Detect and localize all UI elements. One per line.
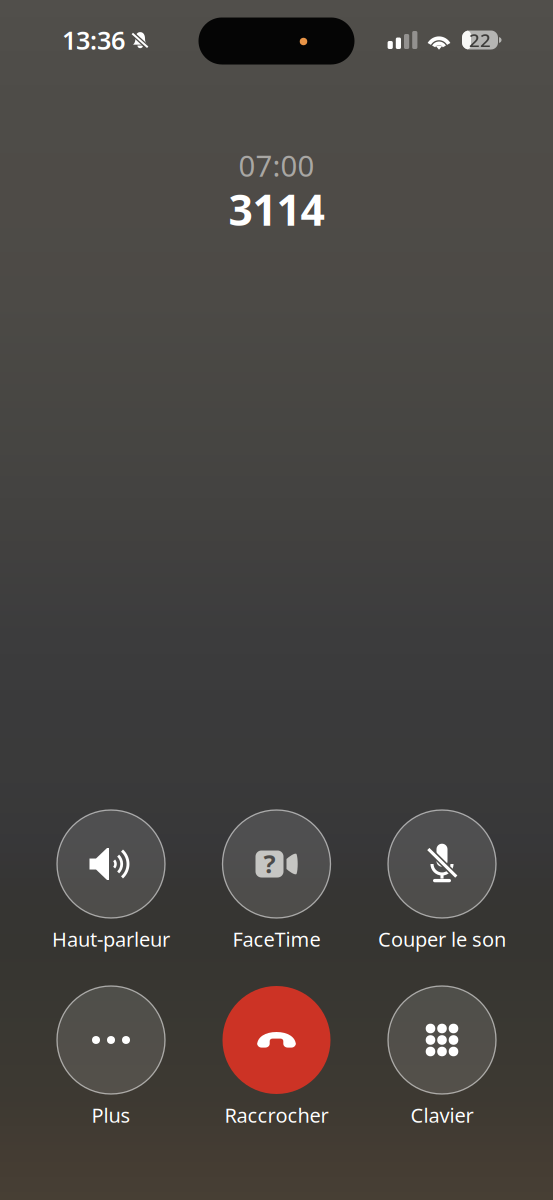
staticText: 07:00: [238, 146, 314, 185]
button[interactable]: Plus: [28, 986, 194, 1136]
staticText: FaceTime: [232, 926, 320, 952]
staticText: 13:36: [62, 23, 125, 57]
staticText: Couper le son: [378, 926, 506, 952]
button[interactable]: Haut-parleur: [28, 810, 194, 960]
staticText: Clavier: [410, 1102, 473, 1128]
staticText: ?: [263, 847, 275, 880]
button[interactable]: Couper le son: [359, 810, 525, 960]
staticText: Raccrocher: [224, 1102, 328, 1128]
button[interactable]: Clavier: [359, 986, 525, 1136]
button[interactable]: Raccrocher: [194, 986, 359, 1136]
staticText: Plus: [91, 1102, 130, 1128]
staticText: Haut-parleur: [52, 926, 170, 952]
staticText: 22: [469, 28, 491, 52]
button[interactable]: ?: [194, 810, 359, 960]
staticText: 3114: [228, 181, 324, 238]
